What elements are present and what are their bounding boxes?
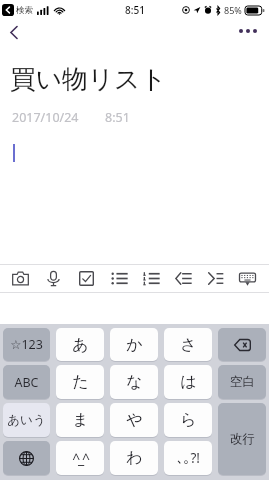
staticText: わ [126, 448, 143, 468]
button[interactable]: は [164, 365, 212, 399]
staticText: ま [72, 410, 89, 430]
staticText: ら [180, 410, 197, 430]
button[interactable]: More options [233, 20, 263, 42]
button[interactable]: あ [56, 328, 104, 361]
staticText: や [126, 410, 143, 430]
staticText: あ [72, 335, 89, 355]
button[interactable]: ､｡?! [164, 441, 212, 475]
button[interactable]: Microphone [37, 265, 70, 292]
staticText: 8:51 [125, 3, 145, 17]
button[interactable]: ☆123 [3, 328, 50, 361]
staticText: ABC [14, 374, 39, 391]
staticText: 8:51 [105, 109, 130, 126]
button[interactable]: Increase indent [199, 265, 231, 292]
staticText: 検索 [16, 5, 33, 16]
button[interactable]: Globe [3, 441, 50, 475]
button[interactable]: わ [110, 441, 158, 475]
button[interactable]: 改行 [218, 403, 266, 475]
button[interactable]: さ [164, 328, 212, 361]
button[interactable]: Checklist [70, 265, 103, 292]
button[interactable]: Numbered list [135, 265, 167, 292]
button[interactable]: Decrease indent [167, 265, 199, 292]
staticText: ☆123 [10, 336, 43, 353]
staticText: 買い物リスト [10, 63, 167, 95]
staticText: は [180, 372, 197, 392]
staticText: か [126, 335, 143, 355]
button[interactable]: た [56, 365, 104, 399]
button[interactable]: ら [164, 403, 212, 437]
button[interactable]: Delete [218, 328, 266, 361]
staticText: あいう [7, 412, 46, 428]
button[interactable]: Hide keyboard [231, 265, 263, 292]
staticText: ､｡?! [177, 449, 200, 467]
button[interactable]: か [110, 328, 158, 361]
staticText: 85% [224, 4, 242, 16]
button[interactable]: Camera [4, 265, 37, 292]
staticText: ^_^ [72, 449, 88, 468]
staticText: な [126, 372, 143, 392]
button[interactable]: ま [56, 403, 104, 437]
staticText: 空白 [230, 374, 255, 390]
staticText: 2017/10/24 [12, 109, 79, 126]
button[interactable]: Back [3, 21, 25, 43]
button[interactable]: あいう [3, 403, 50, 437]
button[interactable]: Bulleted list [103, 265, 135, 292]
button[interactable]: や [110, 403, 158, 437]
staticText: た [72, 372, 89, 392]
button[interactable]: ^_^ [56, 441, 104, 475]
staticText: さ [180, 335, 197, 355]
button[interactable]: ABC [3, 365, 50, 399]
button[interactable]: 空白 [218, 365, 266, 399]
staticText: 改行 [230, 431, 255, 447]
button[interactable]: な [110, 365, 158, 399]
